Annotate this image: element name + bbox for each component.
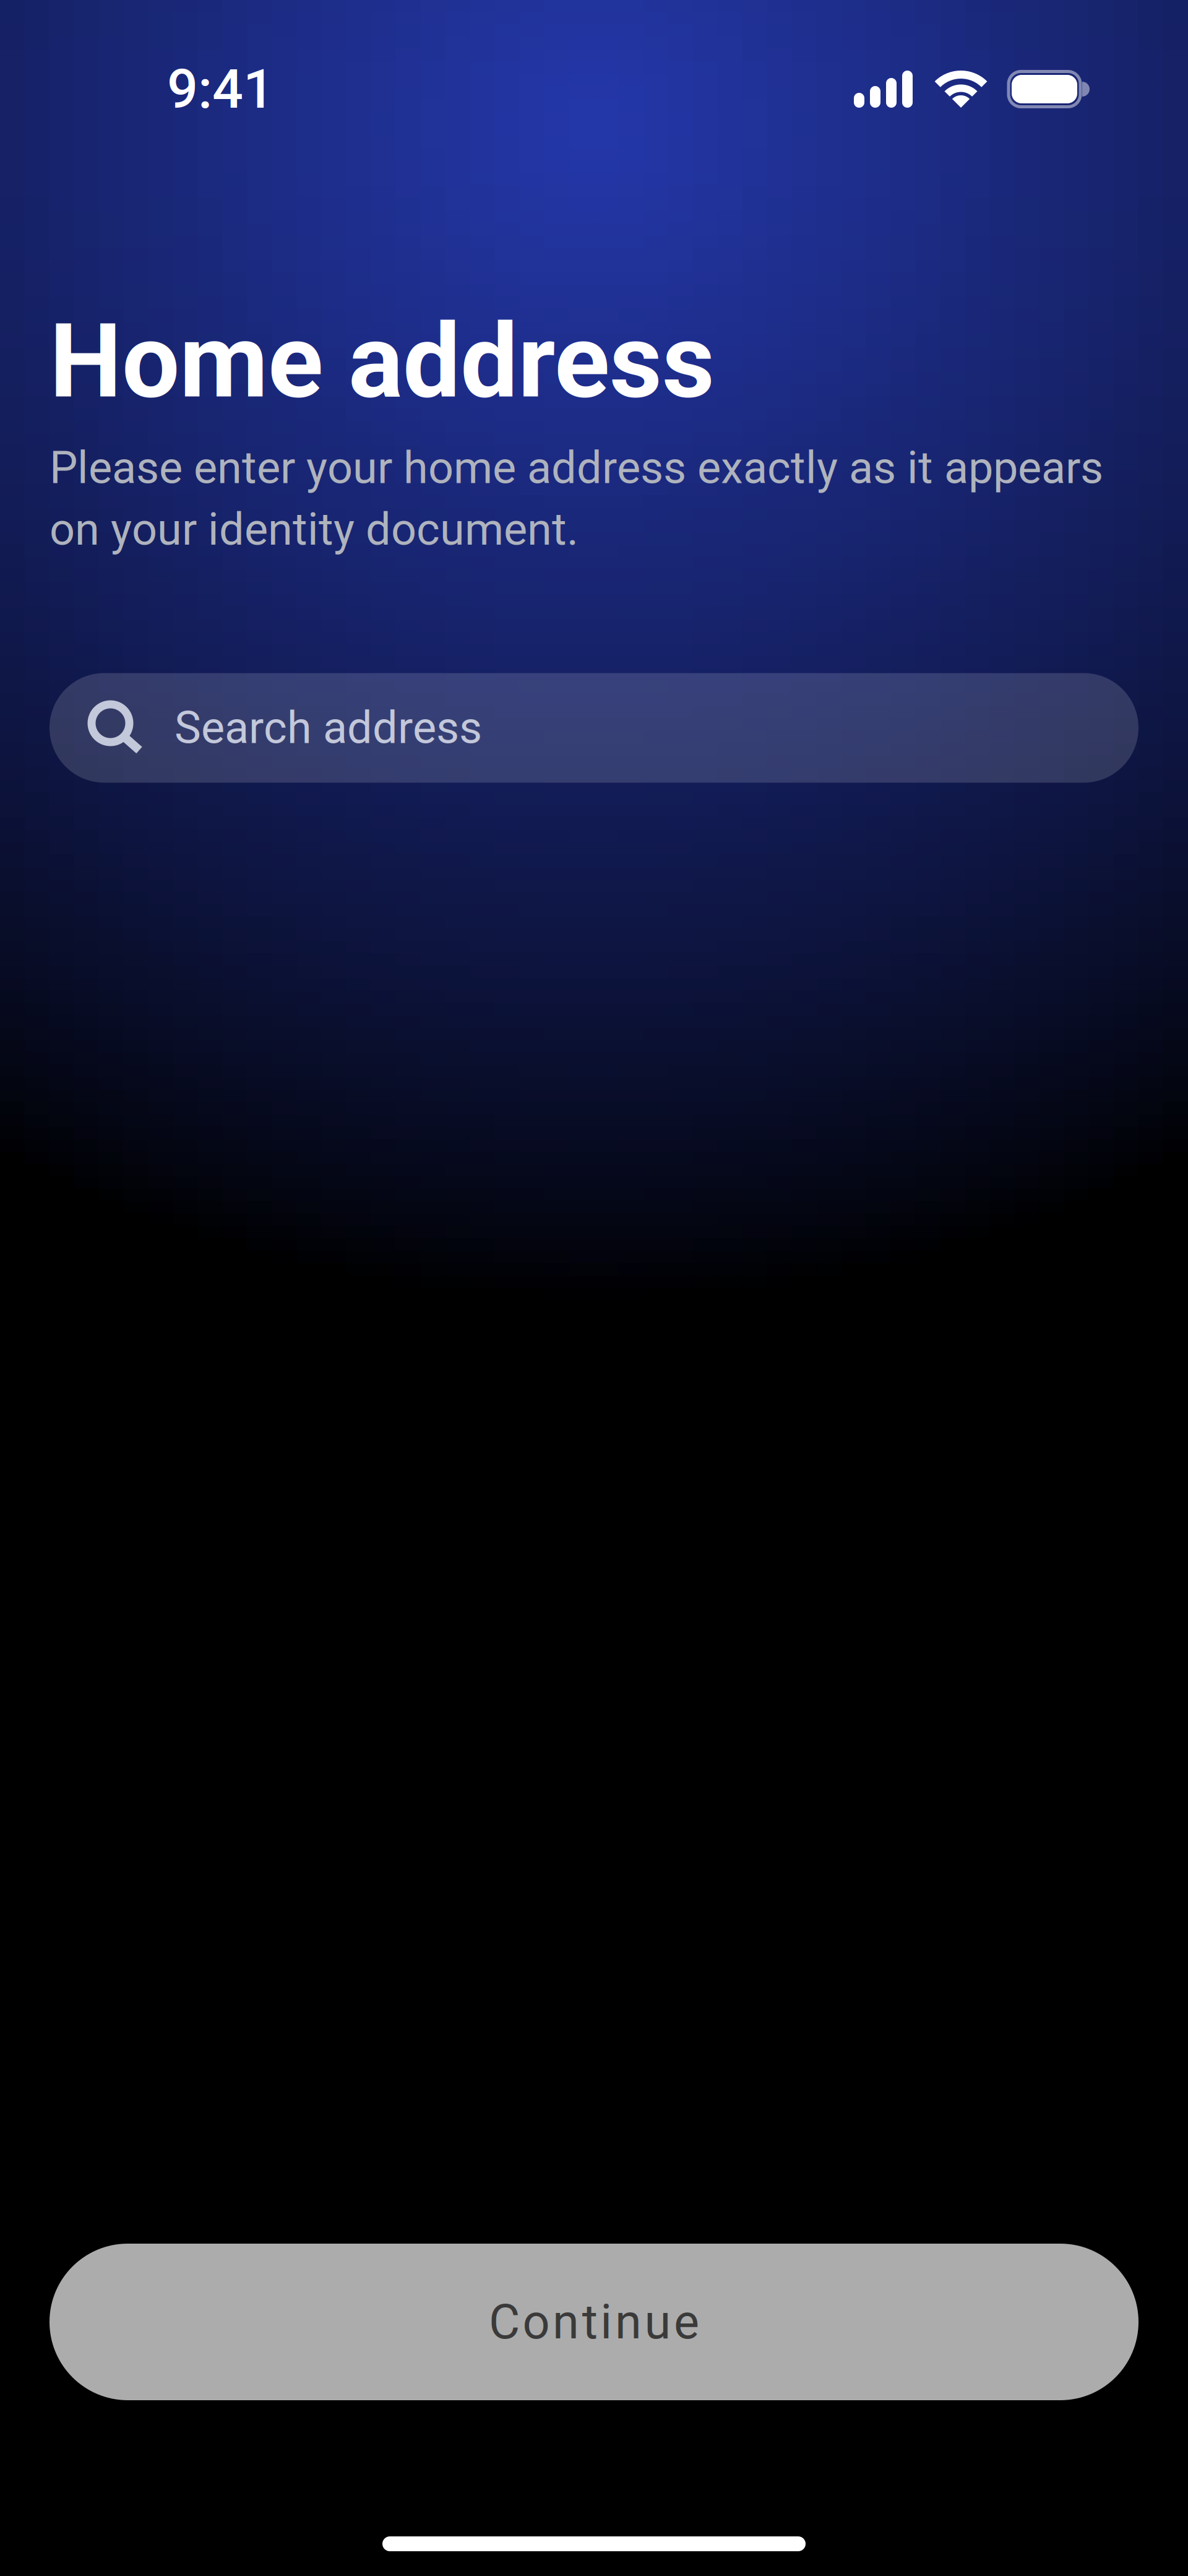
staticText: 9:41	[167, 57, 274, 121]
button[interactable]: Continue	[49, 2244, 1138, 2400]
staticText: Please enter your home address exactly a…	[49, 442, 1103, 555]
staticText: Search address	[174, 702, 482, 754]
button[interactable]: Search address	[49, 673, 1138, 783]
staticText: Continue	[489, 2294, 699, 2350]
staticText: Home address	[49, 301, 715, 421]
